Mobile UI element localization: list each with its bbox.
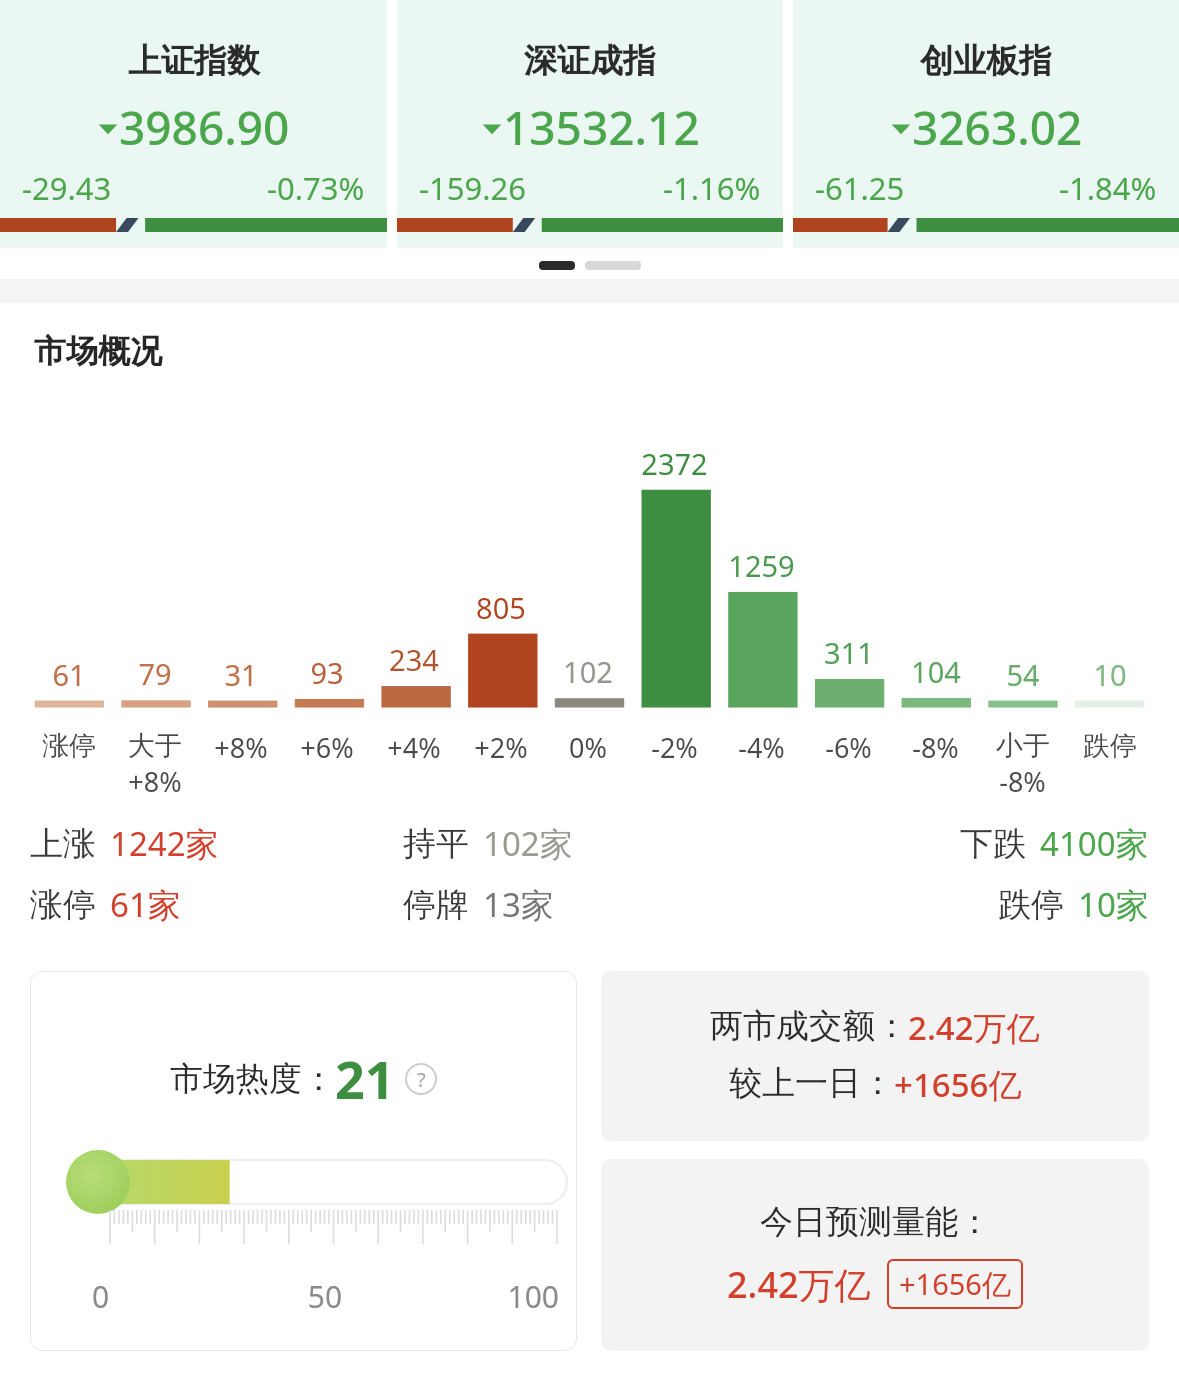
staticText: -1.84% [1059,167,1157,209]
button[interactable]: 市场热度： [30,971,577,1351]
staticText: +6% [300,729,354,766]
staticText: 跌停 [1083,729,1137,763]
staticText: -61.25 [815,167,905,209]
staticText: 79 [138,654,172,693]
staticText: 61家 [110,882,181,927]
staticText: 805 [476,588,526,627]
staticText: 13532.12 [503,96,700,159]
button[interactable]: 上证指数 [0,0,387,248]
staticText: 0% [569,729,607,766]
staticText: 上证指数 [128,40,260,82]
staticText: 102 [563,652,613,691]
staticText: 61 [52,655,86,694]
button[interactable]: 今日预测量能： [601,1159,1149,1351]
button[interactable]: 创业板指 [793,0,1179,248]
staticText: 市场热度： [170,1058,335,1100]
staticText: 涨停 [42,729,96,763]
staticText: 跌停 [998,884,1064,926]
staticText: 创业板指 [920,40,1052,82]
staticText: 31 [224,655,258,694]
staticText: 54 [1006,655,1040,694]
staticText: +2% [474,729,528,766]
staticText: 今日预测量能： [760,1201,991,1243]
staticText: -159.26 [419,167,526,209]
staticText: 大于 [128,729,182,763]
staticText: 2372 [641,444,708,483]
staticText: 50 [247,1276,403,1317]
staticText: 13家 [483,882,554,927]
staticText: 1242家 [110,821,219,866]
staticText: 3986.90 [119,96,290,159]
staticText: 市场概况 [34,331,162,371]
staticText: -1.16% [663,167,761,209]
staticText: +8% [128,763,182,800]
staticText: -0.73% [267,167,365,209]
staticText: 深证成指 [524,40,656,82]
staticText: +1656亿 [899,1264,1011,1304]
staticText: 93 [310,653,344,692]
staticText: 311 [824,633,874,672]
staticText: 102家 [483,821,573,866]
staticText: 10 [1093,655,1127,694]
staticText: 3263.02 [912,96,1083,159]
button[interactable]: 说明 [405,1063,437,1095]
staticText: 涨停 [30,884,96,926]
staticText: +8% [214,729,268,766]
staticText: +1656亿 [894,1062,1022,1107]
staticText: -4% [738,729,785,766]
staticText: 4100家 [1040,821,1149,866]
staticText: 小于 [996,729,1050,763]
staticText: 10家 [1078,882,1149,927]
staticText: 下跌 [960,823,1026,865]
staticText: 21 [335,1043,395,1114]
staticText: 持平 [403,823,469,865]
staticText: 停牌 [403,884,469,926]
staticText: 较上一日： [729,1062,894,1104]
button[interactable]: 深证成指 [397,0,783,248]
staticText: 2.42万亿 [908,1005,1040,1050]
button[interactable]: 两市成交额： [601,971,1149,1141]
staticText: 234 [389,640,439,679]
staticText: -8% [912,729,959,766]
staticText: 100 [403,1276,559,1317]
staticText: 104 [911,652,961,691]
staticText: 上涨 [30,823,96,865]
staticText: -29.43 [22,167,112,209]
staticText: -6% [825,729,872,766]
staticText: -2% [651,729,698,766]
staticText: 2.42万亿 [727,1260,871,1309]
staticText: 1259 [728,546,795,585]
staticText: 0 [92,1276,247,1317]
staticText: 两市成交额： [710,1005,908,1047]
staticText: +4% [387,729,441,766]
staticText: -8% [999,763,1046,800]
staticText: ? [417,1066,426,1093]
